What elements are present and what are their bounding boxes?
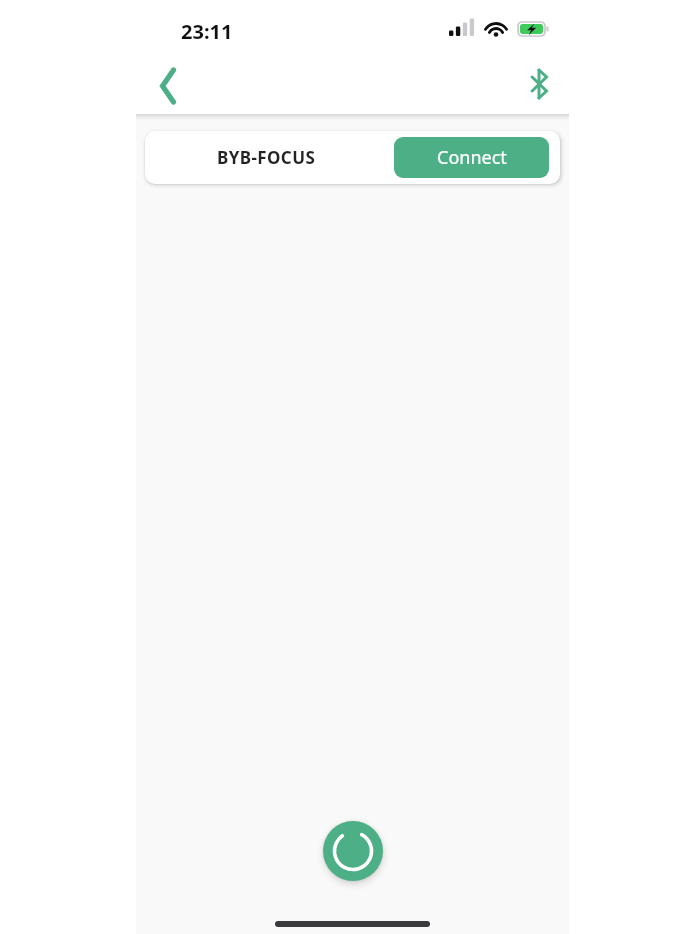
- button[interactable]: Connecting: [323, 821, 383, 881]
- button[interactable]: Connect: [394, 137, 549, 178]
- staticText: BYB-FOCUS: [217, 146, 316, 169]
- staticText: Connect: [437, 145, 507, 170]
- button[interactable]: BYB-FOCUS: [145, 131, 560, 184]
- staticText: 23:11: [181, 18, 233, 45]
- button[interactable]: Back: [138, 58, 194, 114]
- button[interactable]: Bluetooth: [513, 58, 565, 110]
